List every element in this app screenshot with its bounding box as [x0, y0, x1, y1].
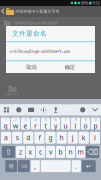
staticText: g [48, 133, 52, 142]
button[interactable]: z [16, 146, 25, 158]
staticText: l [94, 133, 96, 142]
staticText: 0 [94, 117, 96, 122]
staticText: b [58, 147, 62, 156]
button[interactable]: Back [0, 6, 5, 17]
staticText: u [63, 122, 67, 130]
button[interactable]: g [45, 132, 56, 144]
button[interactable]: . [72, 160, 81, 172]
button[interactable]: f [34, 132, 44, 144]
button[interactable]: Settings [77, 104, 88, 115]
button[interactable]: , [31, 160, 40, 172]
staticText: 6 [54, 117, 56, 122]
staticText: m [77, 147, 83, 156]
button[interactable]: Language [13, 104, 24, 115]
button[interactable]: 1 [1, 117, 10, 129]
staticText: o [83, 122, 87, 130]
staticText: :mik7lkLwyIOogh~a#tiSSnbHY=.pnk [9, 48, 70, 54]
staticText: e [23, 122, 27, 130]
staticText: 新建文件夹 [5, 93, 20, 96]
staticText: r [34, 122, 37, 130]
button[interactable]: 2 [11, 117, 20, 129]
button[interactable]: 确定 [57, 62, 83, 73]
staticText: ↵ [86, 162, 92, 170]
button[interactable]: 7 [61, 117, 70, 129]
button[interactable]: ⇧ [2, 146, 15, 158]
staticText: ⌫ [87, 147, 98, 156]
staticText: a [4, 133, 8, 142]
button[interactable]: n [66, 146, 75, 158]
button[interactable]: 0 [91, 117, 100, 129]
button[interactable]: ↵ [82, 160, 96, 172]
staticText: w [13, 122, 18, 130]
button[interactable]: x [26, 146, 35, 158]
button[interactable]: j [68, 132, 78, 144]
button[interactable]: Handwriting [38, 104, 49, 115]
staticText: 4 [34, 117, 36, 122]
button[interactable]: 6 [51, 117, 60, 129]
button[interactable]: Hide keyboard [89, 104, 100, 115]
button[interactable]: m [76, 146, 85, 158]
staticText: n [68, 147, 72, 156]
staticText: q [3, 122, 7, 130]
staticText: j [72, 133, 74, 142]
staticText: 取消 [26, 64, 36, 70]
staticText: y [54, 122, 57, 130]
button[interactable]: 9 [81, 117, 90, 129]
staticText: ⇧ [5, 147, 12, 156]
staticText: h [60, 133, 64, 142]
staticText: t [44, 122, 46, 130]
staticText: 2 [14, 117, 16, 122]
button[interactable]: a [1, 132, 11, 144]
staticText: 1 [4, 117, 6, 122]
staticText: 3 [24, 117, 26, 122]
button[interactable]: 5 [41, 117, 50, 129]
staticText: p [93, 122, 97, 130]
button[interactable]: 8 [71, 117, 80, 129]
staticText: 5 [44, 117, 46, 122]
staticText: x [28, 147, 32, 156]
button[interactable]: 取消 [18, 62, 44, 73]
staticText: z [19, 147, 22, 156]
button[interactable] [41, 160, 71, 172]
button[interactable]: 4 [31, 117, 40, 129]
staticText: i [74, 122, 76, 130]
staticText: v [49, 147, 52, 156]
staticText: 内部存储卡小新建文字夹 [15, 9, 59, 14]
button[interactable]: b [56, 146, 65, 158]
button[interactable]: 3 [21, 117, 30, 129]
staticText: 123 [21, 163, 27, 169]
staticText: 确定 [65, 64, 75, 70]
button[interactable]: Voice input [50, 104, 61, 115]
button[interactable]: s [12, 132, 22, 144]
button[interactable]: l [90, 132, 100, 144]
staticText: 文件重命名 [12, 29, 47, 38]
staticText: c [39, 147, 42, 156]
staticText: 7 [64, 117, 66, 122]
staticText: 89% [81, 0, 88, 6]
staticText: f [38, 133, 40, 142]
staticText: s [16, 133, 19, 142]
button[interactable]: 符 [5, 160, 17, 172]
staticText: d [26, 133, 30, 142]
staticText: , [34, 162, 36, 171]
button[interactable]: h [56, 132, 67, 144]
staticText: 8 [74, 117, 76, 122]
button[interactable]: v [46, 146, 55, 158]
button[interactable]: ⌫ [86, 146, 99, 158]
staticText: . [75, 162, 77, 171]
button[interactable]: k [79, 132, 89, 144]
staticText: k [82, 133, 86, 142]
button[interactable]: c [36, 146, 45, 158]
button[interactable]: Keyboard layout [1, 104, 12, 115]
staticText: 符 [9, 163, 14, 169]
button[interactable]: 123 [18, 160, 30, 172]
button[interactable]: d [23, 132, 33, 144]
staticText: 9:53 [92, 0, 99, 6]
staticText: UVF0bGFSZ6cmePkuInd3T [12, 20, 57, 26]
button[interactable]: Clipboard [26, 104, 37, 115]
staticText: 9 [84, 117, 86, 122]
